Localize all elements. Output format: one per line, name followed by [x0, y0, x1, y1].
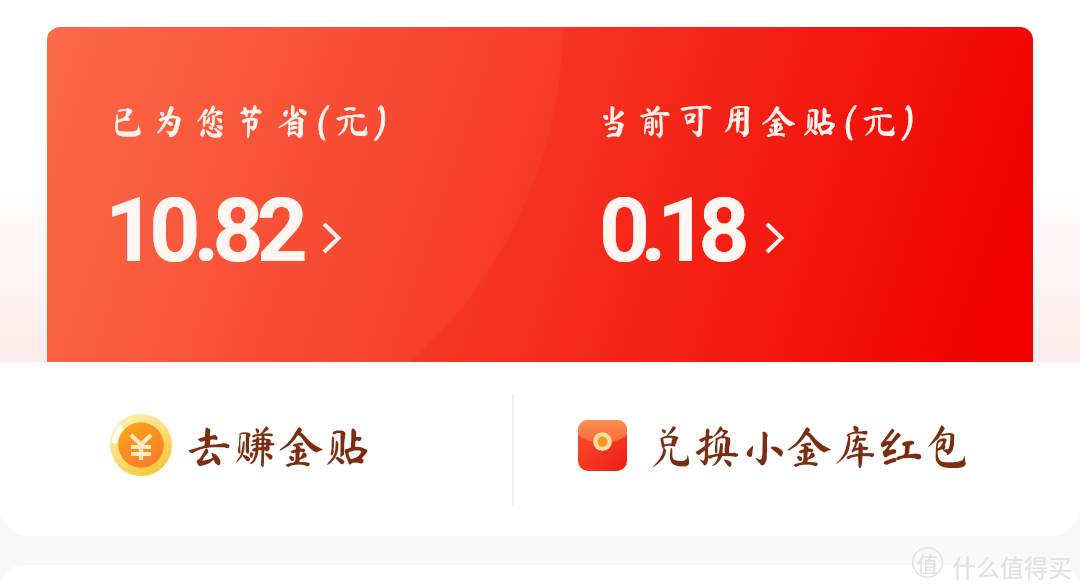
staticText: 兑换小金库红包 [648, 423, 970, 469]
button[interactable]: Exchange red packet [540, 383, 1010, 513]
staticText: 0.18 [599, 178, 740, 282]
button[interactable]: Earn coins [60, 383, 460, 513]
staticText: 已为您节省(元) [110, 103, 394, 138]
other: Earn coins [110, 414, 172, 476]
staticText: 值 [917, 548, 938, 578]
staticText: 什么值得买 [952, 549, 1072, 584]
staticText: 当前可用金贴(元) [596, 103, 921, 138]
button[interactable]: 已为您节省(元) [100, 87, 500, 302]
staticText: 去赚金贴 [186, 423, 370, 469]
staticText: 10.82 [105, 178, 302, 282]
other: Exchange red packet [578, 420, 627, 471]
button[interactable]: 当前可用金贴(元) [586, 87, 986, 302]
